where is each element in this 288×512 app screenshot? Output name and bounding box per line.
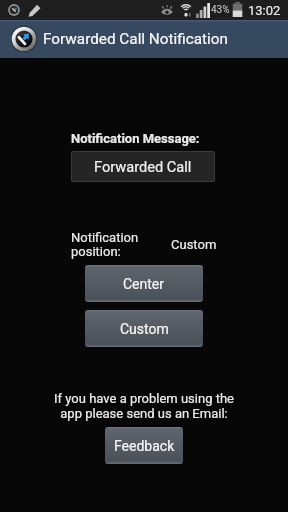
staticText: Notification position: — [71, 230, 139, 259]
button[interactable]: Custom — [85, 310, 203, 347]
staticText: 43% — [211, 4, 230, 16]
staticText: Custom — [120, 321, 169, 337]
button[interactable]: Feedback — [105, 427, 183, 464]
staticText: Custom — [171, 237, 217, 252]
button[interactable]: Center — [85, 265, 203, 302]
staticText: Feedback — [114, 438, 175, 454]
button[interactable]: Forwarded Call — [71, 151, 215, 182]
staticText: If you have a problem using the app plea… — [0, 391, 288, 421]
staticText: Center — [123, 276, 165, 292]
staticText: 13:02 — [248, 3, 281, 18]
staticText: Notification Message: — [71, 131, 200, 146]
staticText: Forwarded Call Notification — [43, 30, 228, 48]
staticText: Forwarded Call — [94, 158, 192, 175]
